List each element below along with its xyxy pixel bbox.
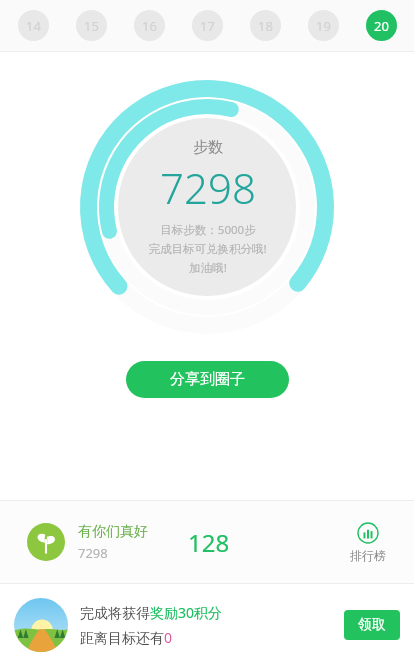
staticText: 17	[200, 17, 215, 35]
staticText: 完成将获得奖励30积分	[80, 603, 223, 622]
button[interactable]: 15	[76, 10, 107, 41]
staticText: 加油哦!	[189, 260, 227, 276]
button[interactable]: 领取	[344, 610, 400, 640]
staticText: 19	[316, 17, 331, 35]
staticText: 有你们真好	[78, 523, 148, 541]
button[interactable]: 有你们真好	[0, 501, 414, 583]
staticText: 14	[26, 17, 41, 35]
staticText: 距离目标还有0	[80, 628, 173, 647]
button[interactable]: 16	[134, 10, 165, 41]
staticText: 分享到圈子	[170, 370, 245, 389]
staticText: 目标步数：5000步	[160, 222, 256, 238]
button[interactable]: 18	[250, 10, 281, 41]
staticText: 20	[374, 17, 389, 35]
staticText: 18	[258, 17, 273, 35]
staticText: 7298	[78, 544, 108, 562]
button[interactable]: 分享到圈子	[126, 361, 289, 398]
button[interactable]: 14	[18, 10, 49, 41]
button[interactable]: 19	[308, 10, 339, 41]
button[interactable]: 排行榜	[340, 518, 396, 567]
staticText: 领取	[358, 616, 386, 634]
button[interactable]: 17	[192, 10, 223, 41]
staticText: 128	[188, 526, 230, 559]
staticText: 16	[142, 17, 157, 35]
button[interactable]: 20	[366, 10, 397, 41]
staticText: 排行榜	[350, 548, 386, 563]
staticText: 7298	[160, 159, 256, 216]
staticText: 完成目标可兑换积分哦!	[148, 241, 267, 257]
staticText: 15	[84, 17, 99, 35]
staticText: 步数	[193, 138, 223, 157]
